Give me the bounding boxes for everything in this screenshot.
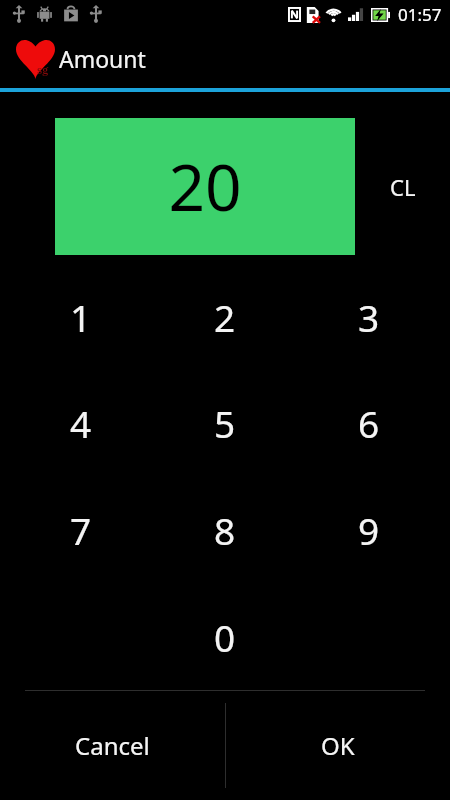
button[interactable]: 6 bbox=[300, 370, 450, 476]
staticText: 9 bbox=[358, 505, 380, 555]
button[interactable]: 7 bbox=[0, 476, 150, 583]
staticText: 8 bbox=[214, 505, 236, 555]
button[interactable]: Clear bbox=[355, 118, 450, 255]
button[interactable]: 4 bbox=[0, 370, 150, 476]
staticText: 3 bbox=[358, 292, 380, 342]
staticText: 4 bbox=[70, 398, 92, 448]
staticText: 2 bbox=[214, 292, 236, 342]
staticText: sg bbox=[37, 62, 49, 77]
button[interactable]: OK bbox=[225, 691, 450, 800]
button[interactable]: 5 bbox=[150, 370, 300, 476]
button[interactable]: 3 bbox=[300, 264, 450, 370]
staticText: CL bbox=[390, 172, 416, 202]
staticText: Amount bbox=[59, 43, 146, 74]
staticText: 0 bbox=[214, 612, 236, 662]
button[interactable]: 1 bbox=[0, 264, 150, 370]
staticText: 5 bbox=[214, 398, 236, 448]
button[interactable]: 2 bbox=[150, 264, 300, 370]
staticText: 01:57 bbox=[398, 3, 442, 26]
staticText: Cancel bbox=[75, 729, 150, 762]
staticText: 20 bbox=[168, 143, 242, 230]
button[interactable]: 9 bbox=[300, 476, 450, 583]
button[interactable]: Amount 20 bbox=[55, 118, 355, 255]
staticText: 6 bbox=[358, 398, 380, 448]
staticText: 1 bbox=[70, 292, 92, 342]
button[interactable]: 8 bbox=[150, 476, 300, 583]
staticText: 7 bbox=[70, 505, 92, 555]
staticText: OK bbox=[321, 729, 355, 762]
button[interactable]: 0 bbox=[150, 583, 300, 690]
button[interactable]: Cancel bbox=[0, 691, 225, 800]
